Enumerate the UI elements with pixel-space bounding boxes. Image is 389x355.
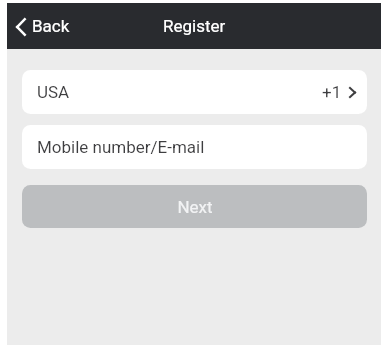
staticText: Next [177,197,213,217]
staticText: Back [32,16,70,36]
staticText: Register [163,16,226,36]
button[interactable]: Back [7,10,80,42]
staticText: +1 [322,82,342,102]
button[interactable]: USA [22,70,367,114]
other: Back [16,18,26,36]
button[interactable]: Next [22,185,367,228]
staticText: USA [37,82,70,102]
staticText: Mobile number/E-mail [37,137,205,157]
button[interactable]: Mobile number/E-mail [22,125,367,169]
